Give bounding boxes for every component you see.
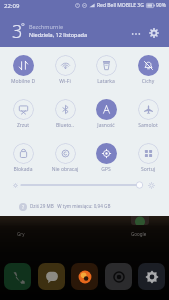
staticText: Cichy xyxy=(127,78,169,85)
button[interactable]: Camera xyxy=(105,263,132,290)
button[interactable]: Browser xyxy=(71,263,98,290)
button[interactable]: Settings xyxy=(138,263,165,290)
button[interactable]: Settings xyxy=(146,25,162,41)
staticText: Nie obracaj xyxy=(44,166,86,173)
button[interactable]: Messages xyxy=(38,263,65,290)
staticText: Zrzut xyxy=(2,122,44,129)
button[interactable]: Blokada xyxy=(2,143,44,173)
staticText: 90% xyxy=(156,2,166,9)
button[interactable]: Nie obracaj xyxy=(44,143,86,173)
staticText: Bezchmurnie xyxy=(29,23,63,30)
button[interactable]: Phone xyxy=(4,263,31,290)
button[interactable]: Wi-Fi xyxy=(44,55,86,85)
staticText: Samolot xyxy=(127,122,169,129)
staticText: Sortuj xyxy=(127,166,169,173)
button[interactable]: GPS xyxy=(85,143,127,173)
staticText: Blueto.. xyxy=(44,122,86,129)
staticText: Red Bell MOBILE 3G xyxy=(97,2,144,9)
staticText: GPS xyxy=(85,166,127,173)
staticText: Google xyxy=(131,231,147,237)
staticText: Latarka xyxy=(85,78,127,85)
button[interactable]: Zrzut xyxy=(2,99,44,129)
button[interactable]: Latarka xyxy=(85,55,127,85)
button[interactable]: Samolot xyxy=(127,99,169,129)
button[interactable]: Mobilne D xyxy=(2,55,44,85)
button[interactable]: Sortuj xyxy=(127,143,169,173)
staticText: Mobilne D xyxy=(2,78,44,85)
staticText: Jasność xyxy=(85,122,127,129)
staticText: Blokada xyxy=(2,166,44,173)
staticText: Niedziela, 12 listopada xyxy=(29,31,88,38)
button[interactable]: Blueto.. xyxy=(44,99,86,129)
staticText: Gry xyxy=(17,231,25,237)
staticText: 22:09 xyxy=(4,2,20,10)
button[interactable]: More options xyxy=(128,26,144,42)
staticText: 3 xyxy=(12,19,23,44)
staticText: Wi-Fi xyxy=(44,78,86,85)
staticText: ? xyxy=(22,204,25,211)
staticText: Dziś 29 MB W tym miesiącu: 0,94 GB xyxy=(30,203,111,209)
staticText: ° xyxy=(21,20,25,32)
button[interactable]: Jasność xyxy=(85,99,127,129)
button[interactable]: Cichy xyxy=(127,55,169,85)
